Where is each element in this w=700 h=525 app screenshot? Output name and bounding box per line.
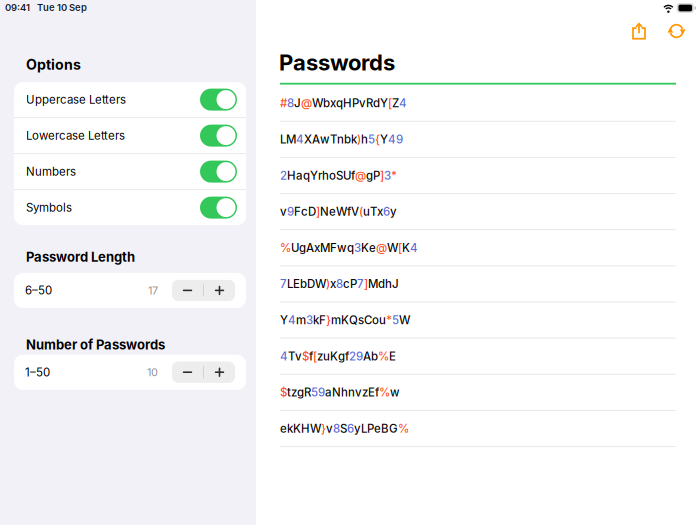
staticText: w [320,132,330,146]
staticText: $ [280,385,287,399]
staticText: 4 [410,241,418,255]
staticText: E [368,385,375,399]
staticText: J [294,96,301,110]
staticText: o [372,313,379,327]
staticText: 2 [349,349,356,363]
staticText: Passwords [279,49,395,76]
staticText: B [381,422,389,435]
staticText: { [375,132,380,146]
staticText: o [329,168,336,182]
staticText: W [387,241,398,255]
button[interactable]: Symbols [14,190,246,225]
staticText: 9 [318,385,325,399]
staticText: z [291,385,297,399]
staticText: 5 [392,313,399,327]
staticText: $ [302,349,309,363]
staticText: k [287,422,293,435]
staticText: d [373,96,380,110]
staticText: 10 [147,366,158,379]
staticText: 8 [287,96,294,110]
button[interactable]: Increase [204,362,235,383]
button[interactable]: Decrease [172,280,203,301]
staticText: P [367,422,374,435]
staticText: Z [392,96,399,110]
staticText: M [286,132,296,146]
staticText: # [280,96,287,110]
staticText: [ [388,96,392,110]
staticText: Tue 10 Sep [37,2,87,13]
staticText: % [379,385,390,399]
button[interactable]: Share [627,20,651,41]
staticText: W [310,422,321,435]
staticText: ] [316,205,320,219]
staticText: } [321,422,326,435]
staticText: x [330,277,336,291]
staticText: F [330,241,337,255]
staticText: v [326,422,333,435]
staticText: S [340,422,347,435]
staticText: G [389,422,398,435]
staticText: f [351,168,355,182]
staticText: Number of Passwords [26,337,165,353]
staticText: R [366,96,373,110]
staticText: 3 [384,168,391,182]
staticText: e [329,205,336,219]
staticText: T [330,132,337,146]
staticText: H [301,422,310,435]
staticText: K [293,422,301,435]
staticText: 5 [311,385,318,399]
staticText: V [351,205,359,219]
button[interactable]: Uppercase Letters [14,82,246,117]
staticText: q [336,96,343,110]
staticText: P [350,277,357,291]
staticText: ] [380,168,384,182]
staticText: D [307,277,315,291]
button[interactable]: Decrease [172,362,203,383]
button[interactable]: Lowercase Letters [14,118,246,153]
staticText: y [354,422,361,435]
staticText: 5 [368,132,375,146]
staticText: % [280,241,291,255]
staticText: u [379,313,386,327]
staticText: r [318,168,322,182]
staticText: M [368,277,378,291]
button[interactable]: Numbers [14,154,246,189]
staticText: 8 [333,422,340,435]
staticText: Y [380,132,388,146]
staticText: a [325,385,332,399]
staticText: } [326,313,331,327]
staticText: 17 [148,284,158,297]
button[interactable]: Regenerate [664,20,689,41]
staticText: h [385,277,392,291]
staticText: Lowercase Letters [26,129,125,143]
staticText: n [348,385,355,399]
staticText: 09:41 [5,2,30,13]
staticText: v [355,385,362,399]
staticText: k [351,132,357,146]
staticText: 1–50 [25,365,50,379]
staticText: P [373,168,380,182]
staticText: K [361,241,369,255]
staticText: M [320,241,330,255]
staticText: Password Length [26,249,135,265]
staticText: 3 [306,313,313,327]
staticText: a [296,168,303,182]
staticText: J [392,277,399,291]
staticText: * [391,168,397,182]
staticText: h [361,132,368,146]
staticText: Options [26,56,81,73]
staticText: 4 [288,313,296,327]
staticText: v [280,205,287,219]
staticText: f [309,349,313,363]
staticText: g [299,241,306,255]
staticText: y [390,205,397,219]
staticText: b [323,96,330,110]
staticText: u [323,349,330,363]
staticText: b [344,132,351,146]
staticText: * [386,313,392,327]
staticText: x [330,96,336,110]
button[interactable]: Increase [204,280,235,301]
staticText: v [359,96,366,110]
staticText: P [352,96,359,110]
staticText: Y [380,96,388,110]
